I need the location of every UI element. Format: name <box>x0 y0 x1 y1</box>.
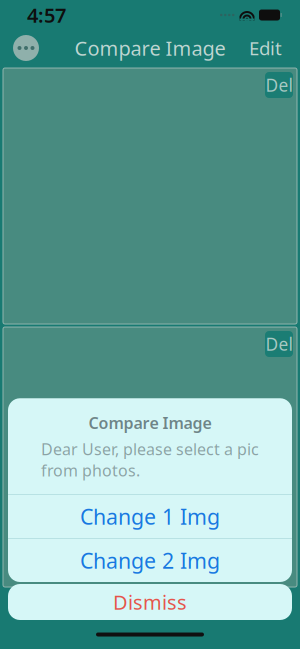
button[interactable]: Change 2 Img <box>8 539 292 582</box>
button[interactable]: Dismiss <box>8 584 292 620</box>
button[interactable]: Edit <box>241 31 290 65</box>
staticText: 4:57 <box>27 2 66 28</box>
staticText: Edit <box>249 36 282 60</box>
staticText: Dismiss <box>113 589 187 615</box>
staticText: Del <box>265 73 292 96</box>
button[interactable]: Del <box>265 331 293 357</box>
staticText: Change 2 Img <box>80 546 220 575</box>
button[interactable]: Change 1 Img <box>8 495 292 538</box>
staticText: Compare Image <box>88 412 211 433</box>
staticText: Change 1 Img <box>80 502 220 531</box>
button[interactable]: More options <box>6 31 46 65</box>
staticText: Dear User, please select a pic from phot… <box>41 438 259 481</box>
staticText: Del <box>265 332 292 355</box>
button[interactable]: Del <box>265 72 293 98</box>
staticText: Compare Image <box>74 35 225 61</box>
